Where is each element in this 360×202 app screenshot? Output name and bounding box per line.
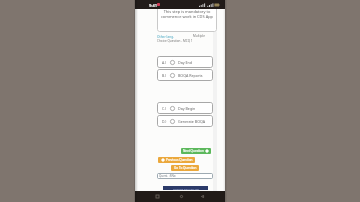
staticText: Go To Question <box>174 166 197 170</box>
staticText: Other lang. <box>157 35 174 39</box>
staticText: Quest. :SNo <box>159 174 176 178</box>
staticText: Continue with CDS App <box>173 187 199 190</box>
button[interactable]: Quest. :SNo <box>157 173 213 179</box>
button[interactable]: Home <box>174 191 188 202</box>
staticText: A.) <box>162 60 167 65</box>
staticText: C.) <box>162 106 167 111</box>
staticText: Day Begin <box>178 106 196 111</box>
button[interactable]: Recents <box>150 191 164 202</box>
staticText: Next Question <box>183 149 204 153</box>
button[interactable]: B.) <box>157 69 213 81</box>
button[interactable]: Previous Question <box>158 157 195 163</box>
staticText: Choice Question - MCQ 1 <box>157 39 193 43</box>
staticText: Previous Question <box>166 158 193 162</box>
staticText: BOQA Reports <box>178 73 203 78</box>
staticText: Generate BOQA <box>178 119 206 124</box>
staticText: Multiple <box>193 34 205 38</box>
staticText: Day End <box>178 60 193 65</box>
staticText: D.) <box>162 119 167 124</box>
staticText: 9:41 <box>149 3 157 8</box>
button[interactable]: Back <box>195 191 209 202</box>
staticText: B.) <box>162 73 167 78</box>
button[interactable]: D.) <box>157 115 213 127</box>
button[interactable]: Go To Question <box>171 165 199 171</box>
button[interactable]: Other lang. <box>157 35 174 39</box>
button[interactable]: C.) <box>157 102 213 114</box>
staticText: This step is mandatory to commence work … <box>159 9 215 19</box>
button[interactable]: Continue with CDS App <box>163 186 208 190</box>
button[interactable]: A.) <box>157 56 213 68</box>
button[interactable]: Next Question <box>181 148 211 154</box>
